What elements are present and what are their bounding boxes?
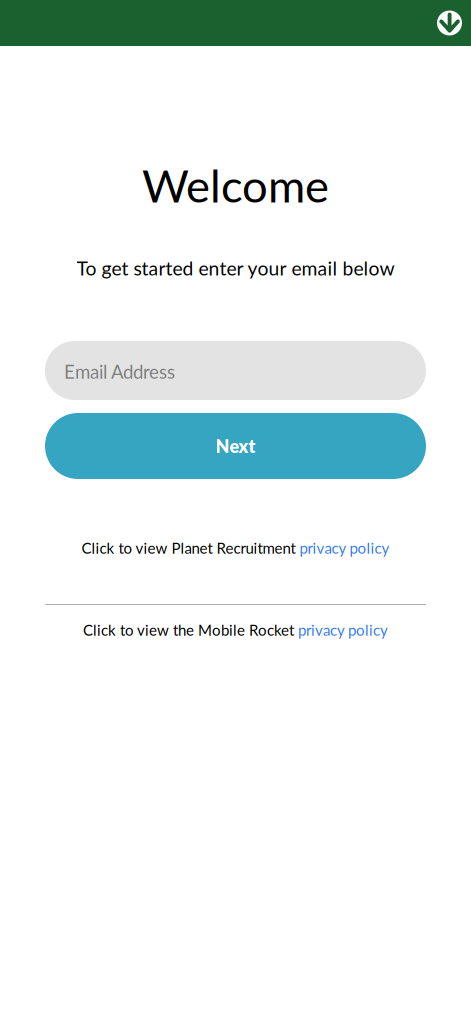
staticText: Welcome (142, 158, 329, 212)
button[interactable]: Click to view the Mobile Rocket (45, 616, 426, 644)
staticText: Click to view Planet Recruitment (81, 539, 299, 557)
button[interactable]: Click to view Planet Recruitment (45, 534, 426, 562)
staticText: Click to view the Mobile Rocket (83, 621, 298, 639)
staticText: privacy policy (299, 539, 389, 557)
button[interactable]: Next (45, 413, 426, 479)
staticText: privacy policy (298, 621, 388, 639)
button[interactable]: Download (437, 10, 471, 35)
staticText: To get started enter your email below (76, 256, 394, 280)
staticText: Next (215, 435, 255, 457)
staticText: Email Address (64, 360, 175, 383)
